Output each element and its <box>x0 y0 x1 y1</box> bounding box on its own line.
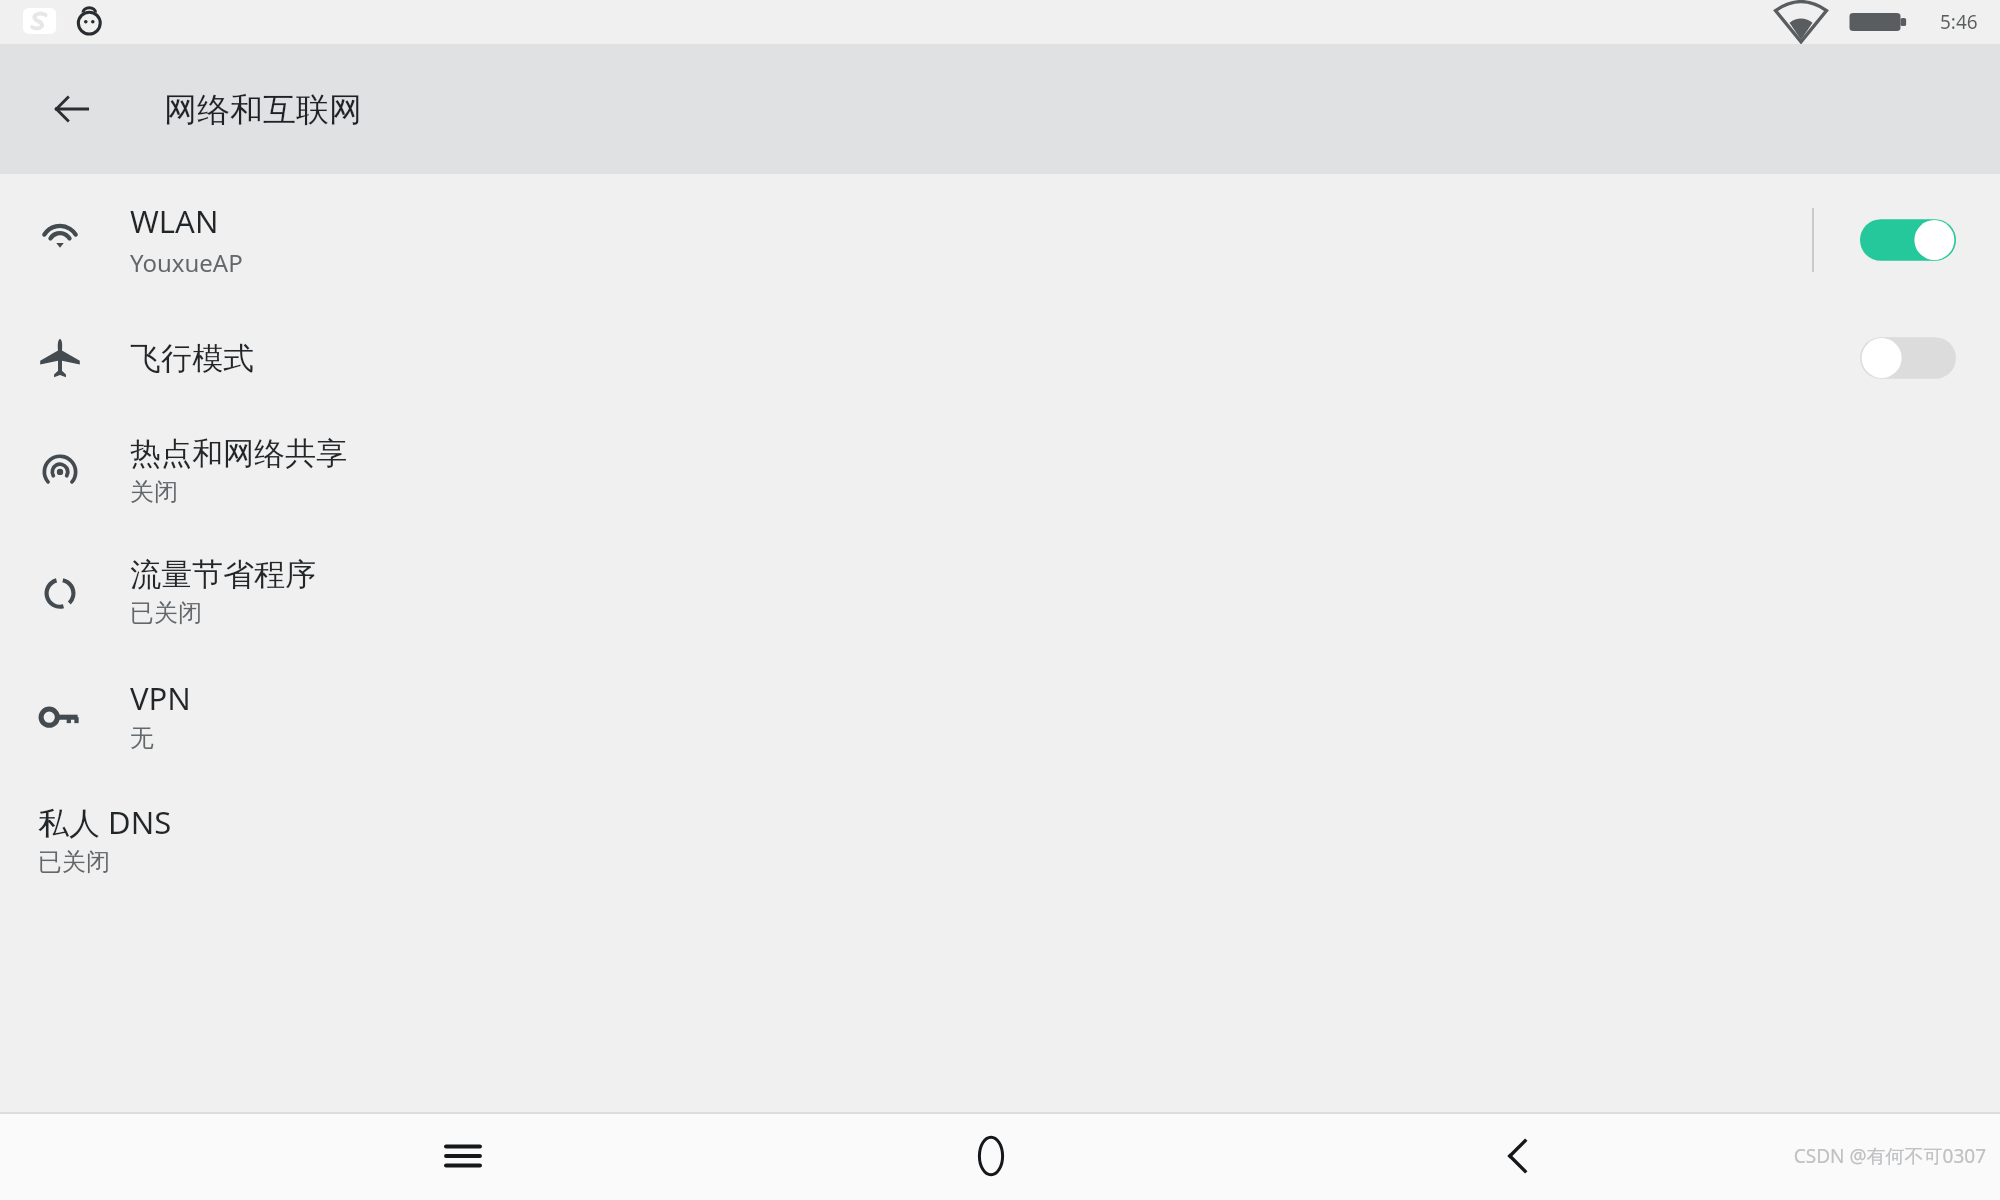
staticText: 热点和网络共享 <box>130 434 347 473</box>
button[interactable]: Recent apps <box>419 1112 507 1200</box>
button[interactable]: 私人 DNS <box>0 776 2000 902</box>
staticText: 网络和互联网 <box>164 89 362 131</box>
staticText: 飞行模式 <box>130 339 254 378</box>
button[interactable]: 飞行模式 <box>0 305 2000 411</box>
staticText: 私人 DNS <box>38 801 172 843</box>
button[interactable]: Back <box>1475 1112 1563 1200</box>
staticText: YouxueAP <box>130 246 243 279</box>
button[interactable]: Back <box>42 79 102 139</box>
button[interactable]: Toggle off <box>1860 332 1956 384</box>
button[interactable]: 热点和网络共享 <box>0 411 2000 530</box>
staticText: 关闭 <box>130 477 178 507</box>
button[interactable]: Toggle on <box>1860 214 1956 266</box>
button[interactable]: WLAN <box>0 174 2000 305</box>
staticText: VPN <box>130 677 191 719</box>
button[interactable]: Home <box>947 1112 1035 1200</box>
staticText: 流量节省程序 <box>130 555 316 594</box>
staticText: 已关闭 <box>38 847 110 877</box>
staticText: WLAN <box>130 200 219 242</box>
staticText: 已关闭 <box>130 598 202 628</box>
button[interactable]: VPN <box>0 653 2000 776</box>
staticText: CSDN @有何不可0307 <box>1793 1143 1986 1169</box>
button[interactable]: 流量节省程序 <box>0 530 2000 653</box>
staticText: 无 <box>130 723 154 753</box>
staticText: 5:46 <box>1940 9 1978 35</box>
